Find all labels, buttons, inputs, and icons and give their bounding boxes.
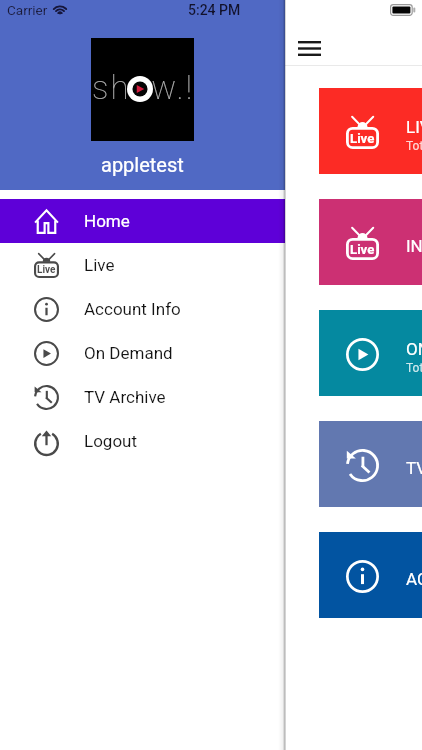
staticText: Carrier xyxy=(7,2,48,18)
staticText: Logout xyxy=(84,431,138,451)
staticText: Total 2450 Movies xyxy=(406,361,422,375)
button[interactable]: Live xyxy=(319,199,422,285)
button[interactable]: Live xyxy=(319,88,422,174)
staticText: On Demand xyxy=(84,343,173,363)
button[interactable]: Open navigation menu xyxy=(287,26,331,70)
staticText: show.! xyxy=(92,68,195,107)
button[interactable]: ACCOUNT INFO xyxy=(319,532,422,618)
button[interactable]: Logout xyxy=(0,419,285,463)
staticText: INDIAN CHANNELS xyxy=(406,236,422,256)
button[interactable]: TV ARCHIVE xyxy=(319,421,422,507)
staticText: TV Archive xyxy=(84,387,166,407)
button[interactable]: Home xyxy=(0,199,285,243)
staticText: Live xyxy=(37,264,56,276)
button[interactable]: Account Info xyxy=(0,287,285,331)
staticText: Live xyxy=(350,131,375,146)
staticText: Home xyxy=(84,211,130,231)
button[interactable]: On Demand xyxy=(0,331,285,375)
staticText: ON DEMAND xyxy=(406,339,422,359)
staticText: Live xyxy=(84,255,115,275)
button[interactable]: Live xyxy=(0,243,285,287)
staticText: appletest xyxy=(101,153,184,176)
staticText: Account Info xyxy=(84,299,181,319)
staticText: ACCOUNT INFO xyxy=(406,569,422,589)
staticText: Total 120 Channels xyxy=(406,139,422,153)
staticText: LIVE TV xyxy=(406,117,422,137)
button[interactable]: TV Archive xyxy=(0,375,285,419)
staticText: 5:24 PM xyxy=(188,2,241,18)
staticText: TV ARCHIVE xyxy=(406,458,422,478)
button[interactable]: ON DEMAND xyxy=(319,310,422,396)
staticText: Live xyxy=(350,242,375,257)
